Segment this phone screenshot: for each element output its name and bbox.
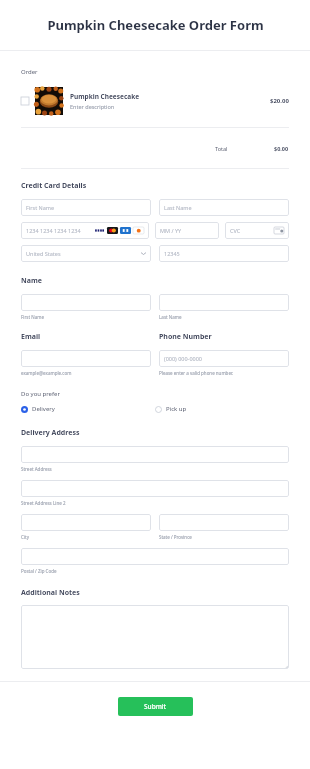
button[interactable] <box>21 446 289 463</box>
staticText: Order <box>21 68 38 76</box>
staticText: 1234 1234 1234 1234 <box>26 227 81 234</box>
staticText: Postal / Zip Code <box>21 568 57 574</box>
staticText: Pumpkin Cheesecake Order Form <box>47 16 264 34</box>
staticText: Phone Number <box>159 332 212 342</box>
staticText: Name <box>21 276 42 286</box>
button[interactable] <box>21 350 151 367</box>
staticText: Pick up <box>166 405 187 413</box>
staticText: (000) 000-0000 <box>164 355 202 362</box>
staticText: Credit Card Details <box>21 181 87 191</box>
button[interactable] <box>159 514 289 531</box>
staticText: First Name <box>21 314 44 320</box>
button[interactable]: Submit <box>118 697 193 716</box>
staticText: MM / YY <box>160 227 182 234</box>
button[interactable]: United States <box>21 245 151 262</box>
button[interactable]: First Name <box>21 199 151 216</box>
staticText: Total <box>215 145 228 152</box>
button[interactable]: MM / YY <box>155 222 219 239</box>
staticText: Delivery Address <box>21 428 80 438</box>
staticText: Email <box>21 332 41 342</box>
button[interactable] <box>21 548 289 565</box>
staticText: United States <box>26 250 61 257</box>
staticText: State / Province <box>159 534 192 540</box>
staticText: Last Name <box>159 314 182 320</box>
button[interactable] <box>159 294 289 311</box>
staticText: Street Address Line 2 <box>21 500 66 506</box>
button[interactable] <box>21 514 151 531</box>
staticText: Street Address <box>21 466 52 472</box>
staticText: Enter description <box>70 103 115 110</box>
staticText: Additional Notes <box>21 588 80 598</box>
staticText: 12345 <box>164 250 180 257</box>
staticText: Do you prefer <box>21 390 60 398</box>
button[interactable]: Delivery <box>21 404 55 414</box>
staticText: Last Name <box>164 204 192 211</box>
staticText: $20.00 <box>270 97 289 105</box>
button[interactable] <box>21 605 289 669</box>
button[interactable]: Pick up <box>155 404 187 414</box>
button[interactable]: (000) 000-0000 <box>159 350 289 367</box>
staticText: $0.00 <box>274 145 289 152</box>
button[interactable] <box>21 294 151 311</box>
button[interactable]: 1234 1234 1234 1234 <box>21 222 149 239</box>
staticText: CVC <box>230 227 241 234</box>
button[interactable]: Last Name <box>159 199 289 216</box>
staticText: Please enter a valid phone number. <box>159 370 234 376</box>
button[interactable]: 12345 <box>159 245 289 262</box>
staticText: City <box>21 534 29 540</box>
button[interactable] <box>21 480 289 497</box>
staticText: example@example.com <box>21 370 72 376</box>
button[interactable]: CVC <box>225 222 289 239</box>
staticText: Pumpkin Cheesecake <box>70 92 140 101</box>
button[interactable]: Pumpkin Cheesecake <box>21 87 289 115</box>
staticText: Submit <box>144 702 167 711</box>
staticText: Delivery <box>32 405 55 413</box>
staticText: First Name <box>26 204 55 211</box>
